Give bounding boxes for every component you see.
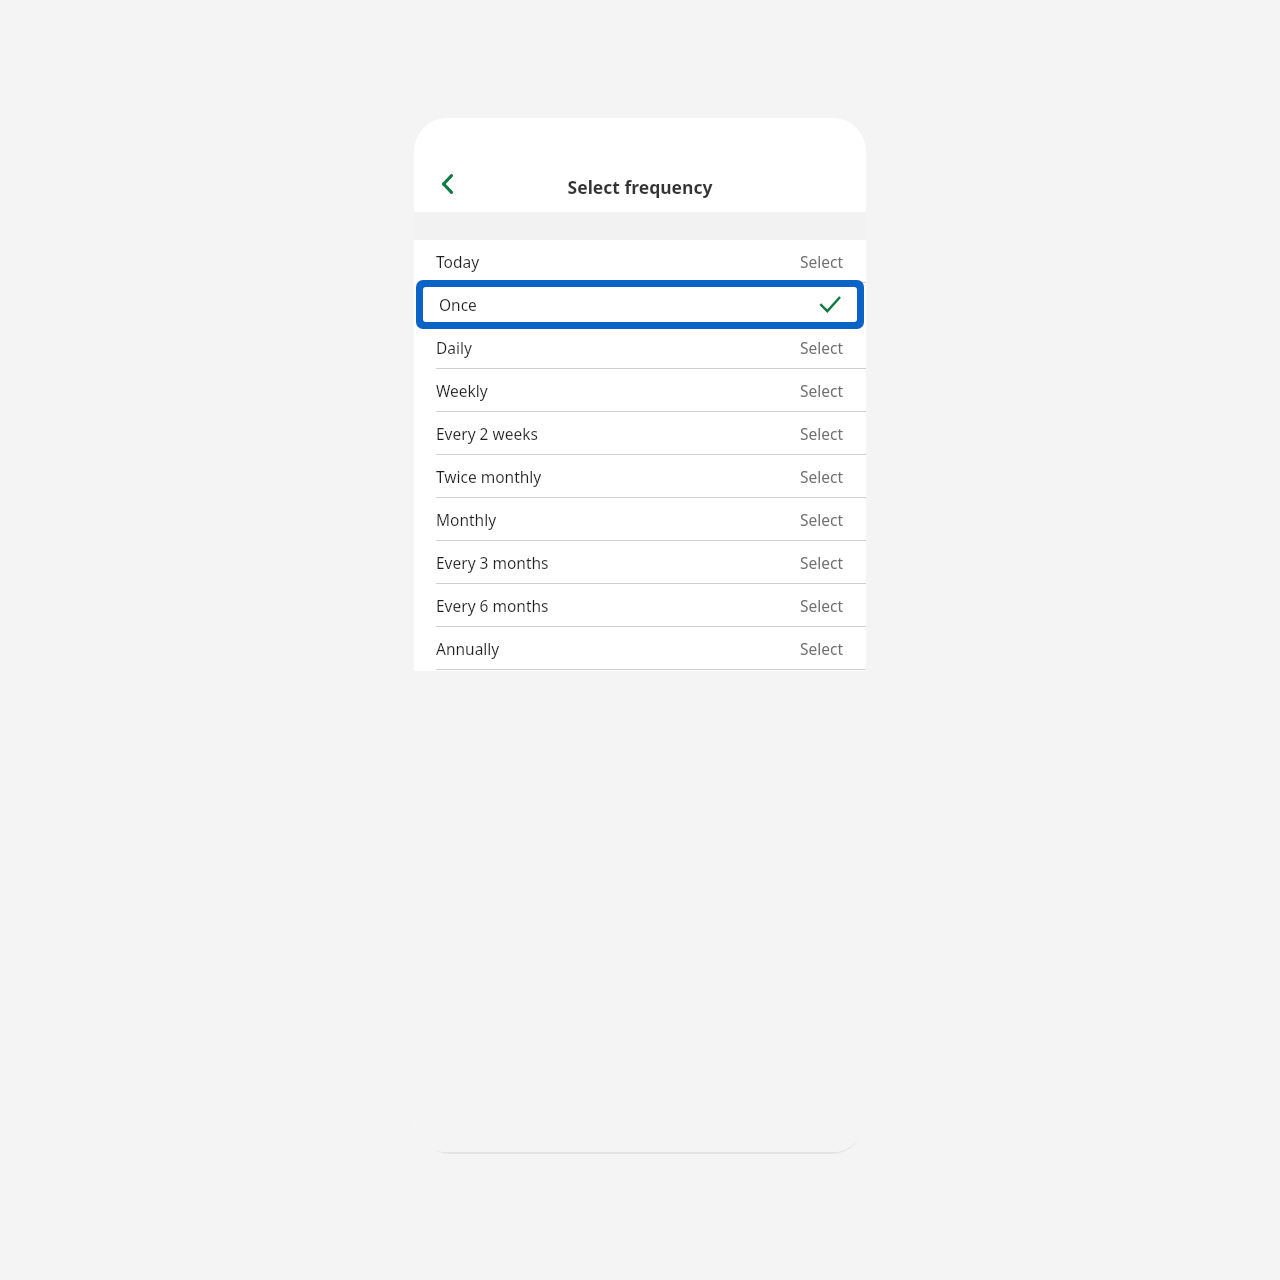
button[interactable]: Every 2 weeks	[414, 412, 866, 455]
staticText: Daily	[436, 337, 472, 358]
button[interactable]: Daily	[414, 326, 866, 369]
staticText: Today	[436, 251, 480, 272]
staticText: Select	[800, 595, 844, 616]
button[interactable]	[414, 283, 866, 326]
staticText: Annually	[436, 638, 500, 659]
button[interactable]: Back	[426, 162, 470, 206]
staticText: Select	[800, 423, 844, 444]
button[interactable]: Twice monthly	[414, 455, 866, 498]
button[interactable]: Monthly	[414, 498, 866, 541]
button[interactable]: Every 3 months	[414, 541, 866, 584]
staticText: Monthly	[436, 509, 497, 530]
staticText: Select	[800, 466, 844, 487]
staticText: Select	[800, 552, 844, 573]
staticText: Select	[800, 337, 844, 358]
staticText: Every 6 months	[436, 595, 549, 616]
button[interactable]: Once	[416, 280, 864, 329]
staticText: Select	[800, 380, 844, 401]
button[interactable]: Annually	[414, 627, 866, 670]
staticText: Select frequency	[414, 175, 866, 199]
staticText: Every 3 months	[436, 552, 549, 573]
staticText: Twice monthly	[436, 466, 542, 487]
staticText: Weekly	[436, 380, 488, 401]
staticText: Select	[800, 638, 844, 659]
staticText: Select	[800, 509, 844, 530]
button[interactable]: Weekly	[414, 369, 866, 412]
staticText: Every 2 weeks	[436, 423, 538, 444]
button[interactable]: Every 6 months	[414, 584, 866, 627]
button[interactable]: Today	[414, 240, 866, 283]
staticText: Select	[800, 251, 844, 272]
staticText: Once	[439, 294, 477, 315]
